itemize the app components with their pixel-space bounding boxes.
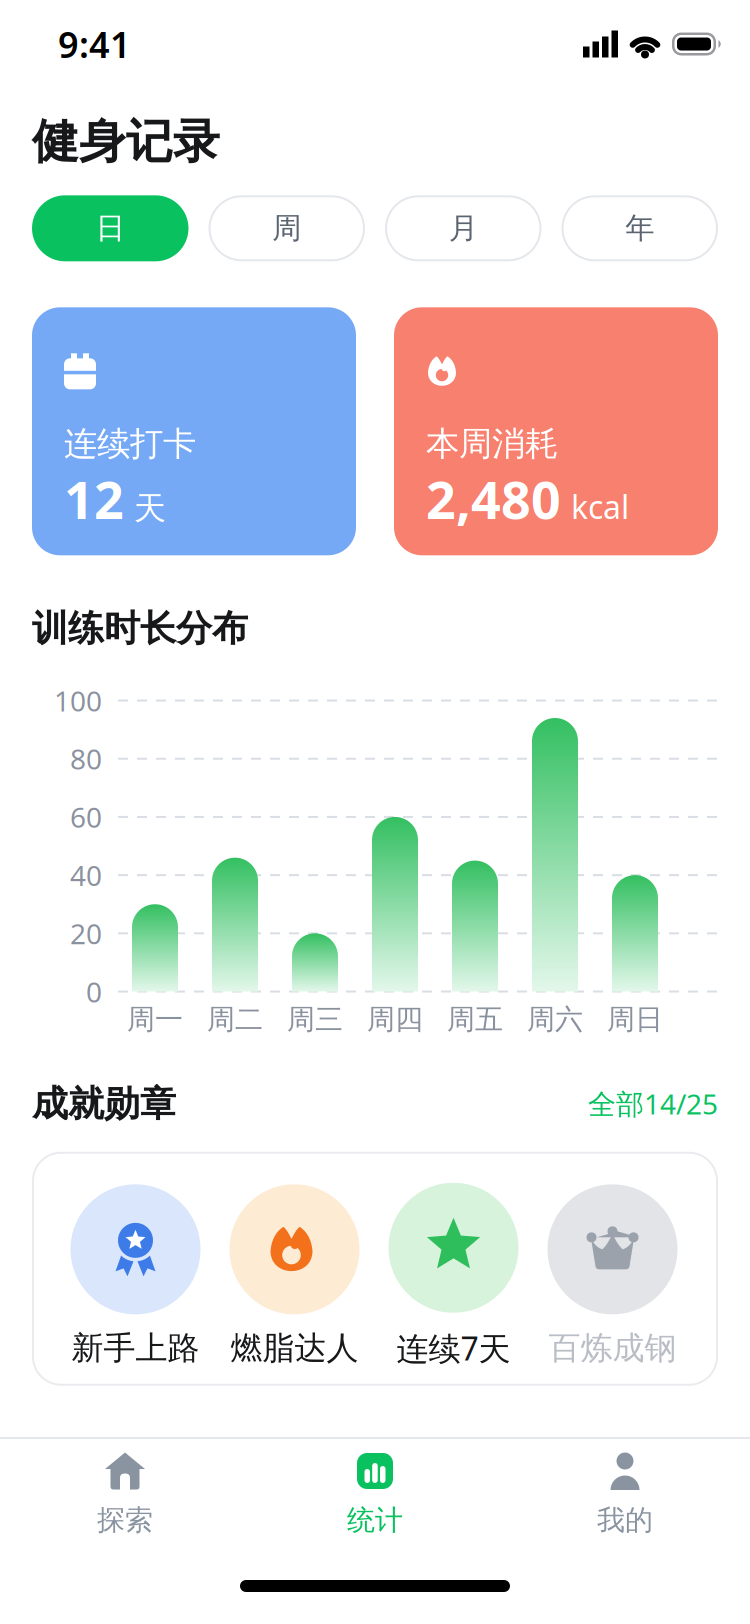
staticText: 全部14/25 [588, 1085, 718, 1122]
staticText: 0 [86, 973, 102, 1010]
staticText: 训练时长分布 [32, 606, 248, 650]
button[interactable]: 年 [561, 195, 718, 261]
button[interactable]: 百炼成钢 [533, 1184, 692, 1368]
staticText: 天 [134, 489, 166, 528]
staticText: 日 [96, 210, 125, 246]
staticText: 60 [70, 798, 102, 835]
staticText: 周二 [207, 1002, 263, 1037]
staticText: 20 [70, 915, 102, 952]
button[interactable]: 本周消耗 [394, 307, 718, 555]
staticText: 我的 [597, 1503, 653, 1537]
button[interactable]: 燃脂达人 [215, 1184, 374, 1368]
staticText: 年 [625, 210, 654, 246]
button[interactable]: 新手上路 [56, 1184, 215, 1368]
button[interactable]: 全部14/25 [588, 1085, 718, 1122]
staticText: 12 [64, 464, 124, 533]
button[interactable]: 我的 [500, 1451, 750, 1537]
staticText: 本周消耗 [426, 423, 558, 464]
staticText: 连续打卡 [64, 423, 196, 464]
staticText: 80 [70, 740, 102, 777]
staticText: 周四 [367, 1002, 423, 1037]
staticText: 9:41 [58, 20, 131, 68]
staticText: 2,480 [426, 464, 561, 533]
staticText: 周 [272, 210, 301, 246]
staticText: 百炼成钢 [548, 1328, 676, 1368]
staticText: 周三 [287, 1002, 343, 1037]
staticText: 月 [449, 210, 478, 246]
staticText: 100 [54, 682, 102, 719]
staticText: 周日 [607, 1002, 663, 1037]
button[interactable]: 连续7天 [374, 1183, 533, 1369]
button[interactable]: 日 [32, 195, 188, 261]
staticText: 连续7天 [396, 1327, 510, 1369]
staticText: 统计 [347, 1503, 403, 1537]
button[interactable]: 统计 [250, 1451, 500, 1537]
staticText: 周六 [527, 1002, 583, 1037]
staticText: 周五 [447, 1002, 503, 1037]
button[interactable]: 周 [208, 195, 365, 261]
staticText: 周一 [127, 1002, 183, 1037]
staticText: 成就勋章 [32, 1081, 176, 1126]
button[interactable]: 月 [385, 195, 541, 261]
staticText: 新手上路 [71, 1328, 199, 1368]
staticText: 40 [70, 856, 102, 894]
staticText: kcal [571, 485, 629, 528]
staticText: 健身记录 [32, 113, 220, 170]
button[interactable]: 连续打卡 [32, 307, 356, 555]
staticText: 燃脂达人 [230, 1328, 358, 1368]
button[interactable]: 探索 [0, 1451, 250, 1537]
staticText: 探索 [97, 1503, 153, 1537]
